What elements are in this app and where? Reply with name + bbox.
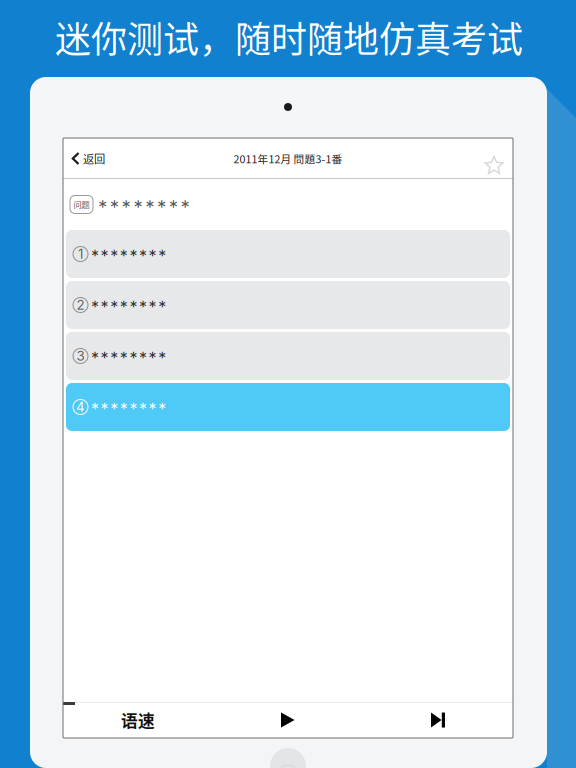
- staticText: *: [101, 297, 109, 317]
- staticText: 语速: [121, 708, 155, 732]
- staticText: *: [139, 297, 147, 317]
- staticText: *: [91, 297, 99, 317]
- staticText: 3: [76, 348, 84, 364]
- staticText: *: [110, 195, 119, 218]
- staticText: *: [139, 246, 147, 266]
- staticText: *: [139, 348, 147, 368]
- staticText: *: [129, 348, 137, 368]
- staticText: *: [149, 348, 157, 368]
- staticText: *: [149, 246, 157, 266]
- staticText: 2011年12月 問題3-1番: [233, 151, 342, 166]
- staticText: *: [110, 246, 118, 266]
- staticText: *: [129, 246, 137, 266]
- button[interactable]: 3: [63, 332, 510, 383]
- button[interactable]: 语速: [63, 702, 213, 738]
- staticText: *: [110, 348, 118, 368]
- staticText: *: [129, 297, 137, 317]
- staticText: *: [149, 297, 157, 317]
- button[interactable]: 1: [63, 230, 510, 281]
- staticText: *: [129, 399, 137, 419]
- staticText: *: [101, 246, 109, 266]
- staticText: 2: [76, 297, 84, 313]
- button[interactable]: Favourite: [471, 138, 513, 179]
- button[interactable]: Play: [213, 702, 363, 738]
- staticText: 4: [76, 399, 85, 415]
- staticText: *: [158, 297, 166, 317]
- staticText: *: [157, 195, 166, 218]
- button[interactable]: 返回: [63, 138, 111, 179]
- staticText: *: [122, 195, 131, 218]
- button[interactable]: 2: [63, 281, 510, 332]
- staticText: *: [181, 195, 190, 218]
- staticText: *: [158, 246, 166, 266]
- staticText: 返回: [83, 150, 105, 167]
- staticText: 问题: [73, 198, 89, 210]
- staticText: *: [145, 195, 154, 218]
- staticText: *: [169, 195, 178, 218]
- staticText: *: [120, 246, 128, 266]
- staticText: 迷你测试，随时随地仿真考试: [55, 11, 523, 63]
- staticText: *: [91, 399, 99, 419]
- staticText: *: [158, 399, 166, 419]
- staticText: *: [120, 399, 128, 419]
- staticText: *: [98, 195, 107, 218]
- staticText: *: [110, 399, 118, 419]
- staticText: *: [139, 399, 147, 419]
- button[interactable]: 4: [63, 383, 510, 434]
- staticText: *: [149, 399, 157, 419]
- staticText: 1: [78, 246, 83, 262]
- staticText: *: [120, 348, 128, 368]
- staticText: *: [91, 348, 99, 368]
- staticText: *: [120, 297, 128, 317]
- staticText: *: [101, 348, 109, 368]
- staticText: *: [101, 399, 109, 419]
- button[interactable]: Next: [363, 702, 513, 738]
- staticText: *: [133, 195, 142, 218]
- staticText: *: [110, 297, 118, 317]
- staticText: *: [158, 348, 166, 368]
- staticText: *: [91, 246, 99, 266]
